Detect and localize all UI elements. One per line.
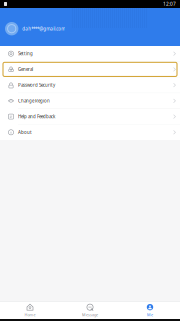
button[interactable]: Home <box>0 302 60 319</box>
button[interactable]: Help and Feedback <box>0 109 180 124</box>
button[interactable]: Setting <box>0 46 180 61</box>
button[interactable]: Password Security <box>0 77 180 93</box>
staticText: About <box>18 129 32 135</box>
staticText: General <box>18 66 33 72</box>
staticText: Home <box>24 312 35 317</box>
staticText: Help and Feedback <box>18 114 55 120</box>
button[interactable]: Message <box>60 302 120 319</box>
staticText: 12:07 <box>163 1 176 7</box>
staticText: Change Region <box>18 98 50 104</box>
button[interactable]: General <box>0 62 180 77</box>
staticText: dah****@gmail.com <box>22 26 65 32</box>
button[interactable]: Me <box>120 302 180 319</box>
button[interactable]: Change Region <box>0 93 180 108</box>
staticText: Me <box>147 312 153 317</box>
button[interactable]: About <box>0 125 180 140</box>
staticText: Password Security <box>18 82 55 88</box>
staticText: Setting <box>18 51 33 57</box>
staticText: Message <box>82 312 98 317</box>
